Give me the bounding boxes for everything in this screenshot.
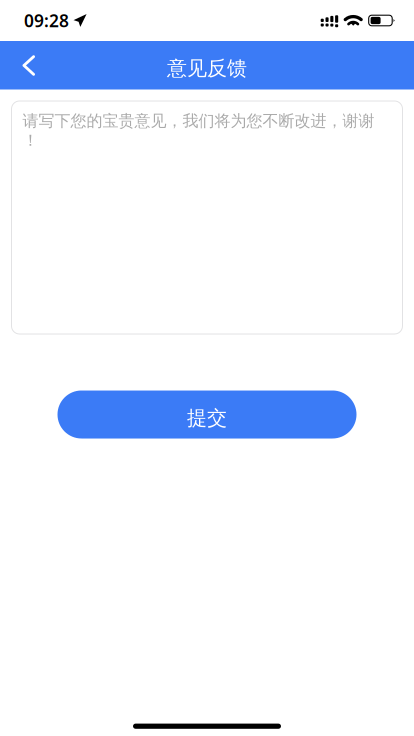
staticText: 提交 <box>187 406 227 430</box>
staticText: 请写下您的宝贵意见，我们将为您不断改进，谢谢 <box>22 111 374 131</box>
button[interactable]: Back <box>0 41 56 89</box>
staticText: ！ <box>22 131 38 150</box>
button[interactable]: 提交 <box>57 390 356 438</box>
staticText: 09:28 <box>24 9 69 32</box>
staticText: 意见反馈 <box>167 56 247 81</box>
